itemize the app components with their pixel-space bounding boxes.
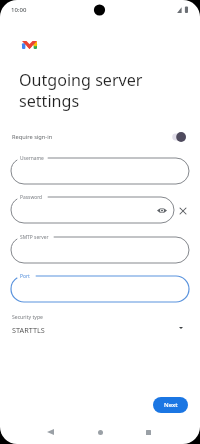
button[interactable]: Port: [11, 276, 189, 302]
staticText: Port: [20, 273, 30, 280]
button[interactable]: Require sign-in: [171, 131, 187, 143]
button[interactable]: Show password: [155, 203, 169, 217]
staticText: Next: [164, 401, 178, 409]
staticText: Require sign-in: [12, 133, 53, 141]
staticText: Username: [20, 155, 44, 162]
button[interactable]: SMTP server: [11, 237, 189, 263]
button[interactable]: Password: [11, 197, 174, 223]
button[interactable]: Home: [89, 422, 111, 442]
staticText: Security type: [12, 314, 43, 321]
staticText: Outgoing server settings: [19, 69, 143, 112]
staticText: Password: [20, 194, 43, 201]
button[interactable]: Username: [11, 158, 189, 184]
button[interactable]: Back: [39, 422, 61, 442]
button[interactable]: Require sign-in: [0, 127, 200, 147]
button[interactable]: Next: [153, 397, 188, 413]
button[interactable]: Clear password: [176, 204, 190, 218]
button[interactable]: Recent apps: [137, 422, 159, 442]
staticText: STARTTLS: [12, 325, 45, 335]
staticText: SMTP server: [20, 234, 49, 241]
button[interactable]: Security type STARTTLS: [0, 310, 200, 340]
staticText: 10:00: [11, 6, 27, 14]
